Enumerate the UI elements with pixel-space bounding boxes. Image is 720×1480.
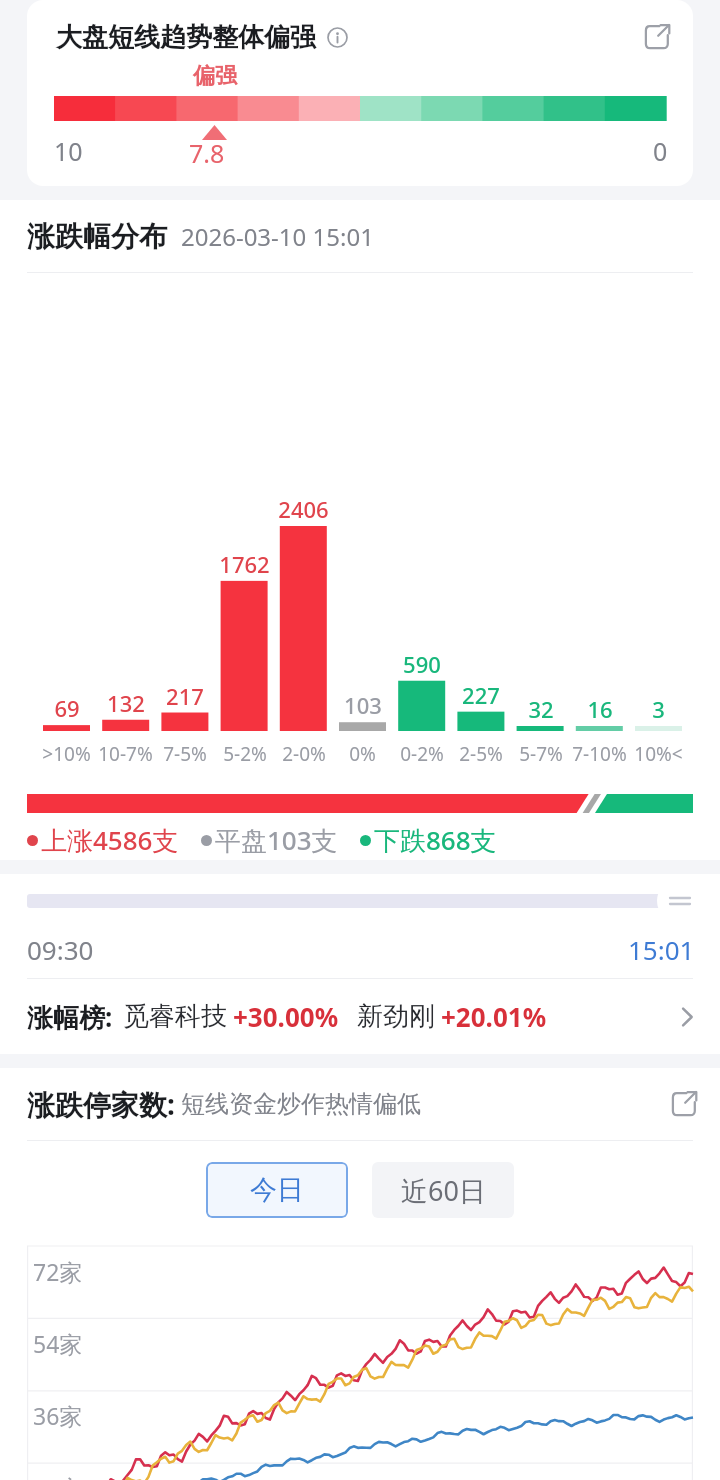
button[interactable]: 平盘103支 <box>201 822 338 858</box>
staticText: 590 <box>403 649 441 679</box>
staticText: 7-5% <box>163 741 207 767</box>
staticText: 上涨4586支 <box>41 822 179 858</box>
button[interactable]: 上涨4586支 <box>27 822 179 858</box>
staticText: 72家 <box>33 1256 83 1287</box>
staticText: 5-7% <box>519 741 563 767</box>
button[interactable]: 展开详情 <box>664 1084 704 1124</box>
staticText: 32 <box>528 694 554 724</box>
staticText: 大盘短线趋势整体偏强 <box>56 21 316 54</box>
staticText: 偏强 <box>193 62 237 90</box>
staticText: 132 <box>107 688 145 718</box>
staticText: 2406 <box>278 494 329 524</box>
staticText: 新劲刚 <box>357 1000 435 1033</box>
staticText: 平盘103支 <box>215 822 338 858</box>
staticText: 7.8 <box>189 136 225 170</box>
staticText: 涨跌幅分布 <box>27 219 167 254</box>
staticText: 5-2% <box>223 741 267 767</box>
staticText: 短线资金炒作热情偏低 <box>181 1089 421 1119</box>
staticText: 18家 <box>33 1472 83 1480</box>
staticText: 3 <box>652 694 665 724</box>
staticText: 2026-03-10 15:01 <box>181 220 374 253</box>
staticText: 69 <box>54 693 80 723</box>
staticText: 09:30 <box>27 932 94 967</box>
staticText: 2-0% <box>282 741 326 767</box>
staticText: 觅睿科技 <box>123 1000 227 1033</box>
button[interactable]: 时间轴 <box>27 894 693 908</box>
staticText: 227 <box>462 680 500 710</box>
staticText: 今日 <box>250 1173 304 1207</box>
staticText: 0% <box>349 741 376 767</box>
staticText: 103 <box>344 690 382 720</box>
staticText: >10% <box>42 741 91 767</box>
staticText: 涨跌停家数: <box>27 1085 175 1123</box>
staticText: 0-2% <box>400 741 444 767</box>
staticText: 15:01 <box>628 932 695 967</box>
staticText: 54家 <box>33 1328 83 1359</box>
staticText: 0 <box>653 134 668 168</box>
staticText: 16 <box>587 694 613 724</box>
staticText: 涨幅榜: <box>27 999 113 1035</box>
button[interactable]: 涨幅榜: <box>0 979 720 1054</box>
staticText: 1762 <box>219 549 270 579</box>
button[interactable]: 展开详情 <box>637 17 677 57</box>
staticText: 10%< <box>634 741 683 767</box>
staticText: 近60日 <box>401 1172 486 1209</box>
staticText: 36家 <box>33 1400 83 1431</box>
staticText: 2-5% <box>459 741 503 767</box>
staticText: 下跌868支 <box>374 822 497 858</box>
staticText: 217 <box>166 681 204 711</box>
button[interactable]: 说明 <box>325 25 349 49</box>
button[interactable]: 时间滑块 <box>657 878 703 924</box>
staticText: 7-10% <box>572 741 627 767</box>
button[interactable]: 近60日 <box>372 1162 514 1218</box>
staticText: +30.00% <box>233 999 339 1034</box>
button[interactable]: 下跌868支 <box>360 822 497 858</box>
staticText: 10 <box>54 134 83 168</box>
button[interactable]: 今日 <box>206 1162 348 1218</box>
staticText: 10-7% <box>98 741 153 767</box>
staticText: +20.01% <box>441 999 547 1034</box>
